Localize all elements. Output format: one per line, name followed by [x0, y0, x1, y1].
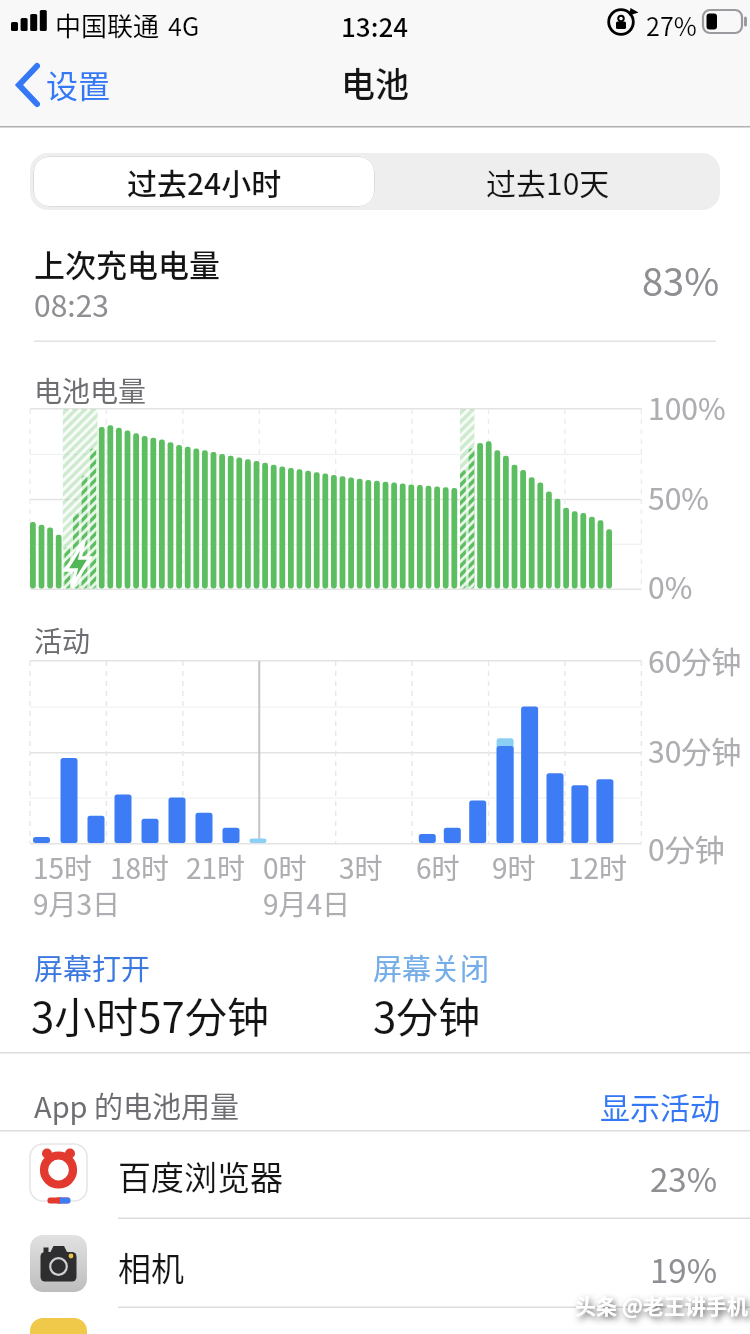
staticText: 0% [648, 564, 693, 607]
button[interactable]: 显示活动 [600, 1084, 720, 1127]
button[interactable]: 百度浏览器 [0, 1131, 750, 1218]
staticText: 12时 [568, 847, 628, 888]
staticText: 21时 [186, 847, 246, 888]
staticText: 30分钟 [648, 728, 742, 771]
staticText: 头条 @老王讲手机 [575, 1290, 748, 1320]
staticText: 中国联通 [55, 6, 160, 44]
staticText: 活动 [34, 620, 91, 661]
staticText: 9月4日 [263, 883, 351, 924]
staticText: 屏幕打开 [34, 946, 151, 988]
button[interactable]: 设置 [8, 58, 133, 114]
staticText: 9时 [492, 847, 536, 888]
staticText: 13:24 [341, 7, 409, 45]
staticText: 屏幕关闭 [373, 946, 490, 988]
staticText: 27% [646, 7, 697, 43]
staticText: 18时 [110, 847, 170, 888]
staticText: 83% [642, 252, 720, 307]
button[interactable]: 相机 [0, 1218, 750, 1307]
staticText: 08:23 [34, 282, 109, 325]
staticText: 3时 [339, 847, 383, 888]
staticText: 百度浏览器 [118, 1152, 283, 1200]
staticText: 23% [650, 1154, 718, 1202]
staticText: 电池电量 [34, 370, 147, 411]
staticText: 过去10天 [486, 160, 610, 203]
button[interactable]: 过去10天 [375, 153, 720, 210]
staticText: 3分钟 [373, 984, 481, 1045]
staticText: 15时 [33, 847, 93, 888]
staticText: 0时 [263, 847, 307, 888]
staticText: 6时 [416, 847, 460, 888]
staticText: 电池 [341, 58, 409, 107]
button[interactable]: 过去24小时 [33, 156, 375, 207]
staticText: 相机 [118, 1243, 184, 1291]
staticText: 3小时57分钟 [31, 984, 269, 1045]
staticText: 设置 [46, 61, 111, 107]
staticText: 显示活动 [600, 1084, 720, 1127]
staticText: 19% [650, 1245, 718, 1293]
staticText: 上次充电电量 [34, 241, 220, 286]
staticText: App 的电池用量 [34, 1084, 240, 1126]
staticText: 过去24小时 [127, 160, 282, 203]
staticText: 50% [648, 475, 709, 518]
staticText: 60分钟 [648, 638, 742, 681]
staticText: 100% [648, 385, 726, 428]
staticText: 9月3日 [33, 883, 121, 924]
staticText: 4G [168, 7, 200, 43]
staticText: 0分钟 [648, 826, 725, 869]
